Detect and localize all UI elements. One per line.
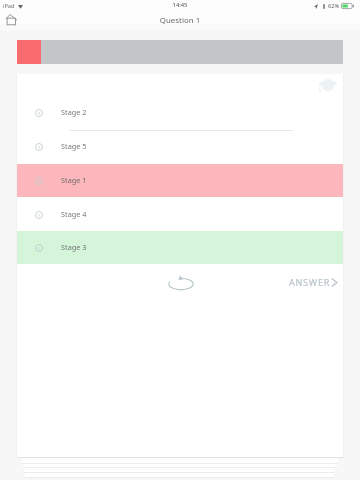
staticText: ANSWER (289, 276, 331, 288)
staticText: 14:45 (0, 1, 360, 9)
staticText: Stage 4 (61, 209, 87, 219)
button[interactable]: Stage 3 (17, 231, 343, 264)
button[interactable]: Stage 2 (17, 96, 343, 129)
button[interactable]: ANSWER (289, 269, 339, 295)
button[interactable]: Stage 4 (17, 198, 343, 231)
staticText: Stage 1 (61, 175, 87, 185)
staticText: Stage 3 (61, 242, 87, 252)
button[interactable]: Stage 1 (17, 164, 343, 197)
staticText: Question 1 (0, 15, 360, 26)
button[interactable]: Home (1, 11, 21, 27)
staticText: iPad (3, 2, 15, 10)
staticText: Stage 5 (61, 141, 87, 151)
button[interactable]: Undo (164, 270, 198, 296)
staticText: 62% (328, 2, 340, 10)
staticText: Stage 2 (61, 107, 87, 117)
button[interactable]: Stage 5 (17, 130, 343, 163)
